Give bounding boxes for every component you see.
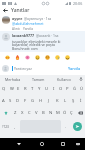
button[interactable]: F (21, 95, 29, 107)
button[interactable]: N (47, 107, 54, 119)
button[interactable]: G (29, 95, 37, 107)
staticText: 20:06 (73, 1, 83, 6)
button[interactable]: Shift (0, 107, 11, 119)
staticText: G (31, 98, 35, 104)
staticText: I (53, 86, 55, 92)
button[interactable]: Recent apps (58, 139, 68, 149)
button[interactable]: P (64, 83, 71, 95)
staticText: tuşacıklar, elimizdeki mesele ki başardı… (12, 39, 61, 51)
button[interactable]: Back (14, 139, 24, 149)
staticText: U (45, 86, 49, 92)
button[interactable]: E (15, 83, 22, 95)
staticText: Ç (70, 110, 73, 116)
button[interactable]: D (14, 95, 21, 107)
button[interactable]: ?123 (0, 120, 11, 133)
button[interactable]: Ç (68, 107, 75, 119)
staticText: N (49, 110, 53, 116)
staticText: C (28, 110, 31, 116)
button[interactable]: Home (37, 139, 47, 149)
staticText: Y (38, 86, 41, 92)
staticText: J (48, 98, 50, 104)
staticText: R (24, 86, 27, 92)
staticText: . (65, 124, 67, 129)
button[interactable]: W (8, 83, 15, 95)
staticText: Ğ (73, 86, 77, 92)
button[interactable]: H (37, 95, 45, 107)
staticText: A (2, 98, 5, 104)
button[interactable]: Ö (61, 107, 68, 119)
button[interactable]: Voice input (77, 75, 85, 83)
staticText: M (56, 110, 60, 116)
staticText: E (17, 86, 20, 92)
button[interactable]: S (7, 95, 14, 107)
staticText: @aysenuryz · 1sa (24, 16, 52, 21)
staticText: ?123 (2, 125, 9, 129)
staticText: F (24, 98, 27, 104)
button[interactable]: V (33, 107, 40, 119)
staticText: Kullanıcı (57, 77, 72, 82)
button[interactable]: O (57, 83, 64, 95)
button[interactable]: K (53, 95, 61, 107)
button[interactable]: Back (0, 6, 11, 14)
button[interactable]: Emoji reaction (52, 52, 62, 62)
button[interactable]: İ (77, 95, 85, 107)
button[interactable]: R (22, 83, 29, 95)
button[interactable]: Emoji reaction (12, 52, 22, 62)
button[interactable]: Emoji reaction (32, 52, 42, 62)
button[interactable]: Z (11, 107, 19, 119)
staticText: D (16, 98, 20, 104)
button[interactable]: Backspace (75, 107, 85, 119)
staticText: X (21, 110, 24, 116)
staticText: Yanıtla (68, 66, 81, 71)
button[interactable]: Y (36, 83, 43, 95)
button[interactable]: L (61, 95, 69, 107)
staticText: Ü (80, 86, 84, 92)
staticText: Z (14, 110, 17, 116)
button[interactable]: I (50, 83, 57, 95)
button[interactable]: Yanıtla (66, 65, 83, 72)
button[interactable]: X (19, 107, 26, 119)
button[interactable]: Tamam (25, 75, 51, 83)
staticText: Alıntı (12, 27, 20, 31)
staticText: Tamam (32, 77, 45, 82)
button[interactable]: A (0, 95, 7, 107)
button[interactable]: ayşee (2, 16, 83, 31)
button[interactable]: Merhaba (0, 75, 25, 83)
button[interactable]: U (43, 83, 50, 95)
staticText: Yanıtlar (11, 7, 30, 14)
button[interactable]: Ğ (71, 83, 78, 95)
staticText: T (31, 86, 34, 92)
button[interactable]: Emoji reaction (2, 52, 12, 62)
staticText: @acaank · 1sa (36, 33, 59, 38)
staticText: O (59, 86, 63, 92)
button[interactable]: Emoji reaction (62, 52, 72, 62)
button[interactable]: B (40, 107, 47, 119)
button[interactable]: Q (0, 83, 8, 95)
button[interactable]: C (26, 107, 33, 119)
button[interactable]: Emoji reaction (42, 52, 52, 62)
staticText: Yanıtla (23, 27, 33, 31)
staticText: Merhaba (5, 77, 21, 82)
button[interactable]: Send (73, 122, 82, 131)
staticText: V (35, 110, 38, 116)
staticText: lacaank9777 (12, 33, 35, 38)
button[interactable]: J (45, 95, 53, 107)
button[interactable]: Emoji reaction (22, 52, 32, 62)
staticText: , (14, 124, 16, 129)
button[interactable]: Kullanıcı (51, 75, 77, 83)
staticText: Q (2, 86, 6, 92)
staticText: Ö (63, 110, 67, 116)
staticText: W (10, 86, 14, 92)
button[interactable]: T (29, 83, 36, 95)
button[interactable]: Ş (69, 95, 77, 107)
button[interactable]: lacaank9777 (2, 33, 83, 52)
staticText: L (64, 98, 67, 104)
button[interactable]: Ü (78, 83, 85, 95)
staticText: ayşee (12, 16, 23, 21)
button[interactable]: M (54, 107, 61, 119)
button[interactable]: , (11, 120, 19, 133)
button[interactable]: Hide keyboard (73, 139, 83, 149)
staticText: P (66, 86, 69, 92)
